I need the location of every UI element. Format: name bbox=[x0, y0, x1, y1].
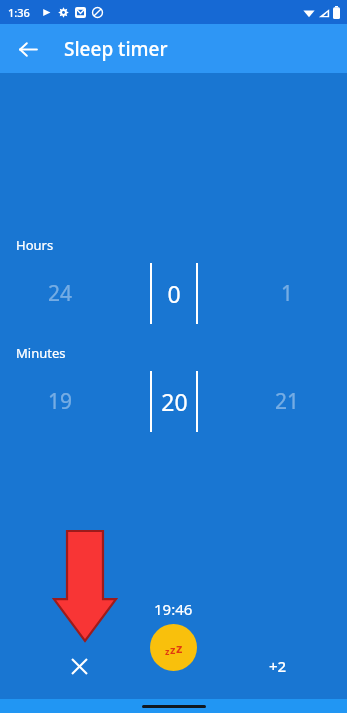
staticText: Hours bbox=[16, 236, 54, 254]
staticText: 0 bbox=[167, 278, 181, 309]
staticText: 20 bbox=[161, 386, 188, 417]
button[interactable]: 21 bbox=[227, 387, 347, 416]
button[interactable]: Sleep bbox=[150, 624, 197, 671]
button[interactable]: 1 bbox=[227, 279, 347, 308]
staticText: +2 bbox=[269, 656, 287, 676]
button[interactable]: 0 bbox=[152, 278, 196, 309]
staticText: z bbox=[176, 639, 183, 657]
button[interactable]: 19 bbox=[0, 387, 120, 416]
staticText: z bbox=[165, 645, 170, 657]
staticText: Sleep timer bbox=[64, 36, 168, 62]
staticText: 19:46 bbox=[154, 599, 193, 619]
button[interactable]: 20 bbox=[152, 386, 196, 417]
button[interactable]: 24 bbox=[0, 279, 120, 308]
button[interactable]: Back bbox=[8, 29, 48, 69]
staticText: Minutes bbox=[16, 344, 66, 362]
staticText: z bbox=[170, 642, 176, 657]
button[interactable]: +2 bbox=[254, 642, 302, 690]
staticText: 1:36 bbox=[8, 5, 30, 20]
button[interactable]: Cancel timer bbox=[56, 643, 102, 689]
